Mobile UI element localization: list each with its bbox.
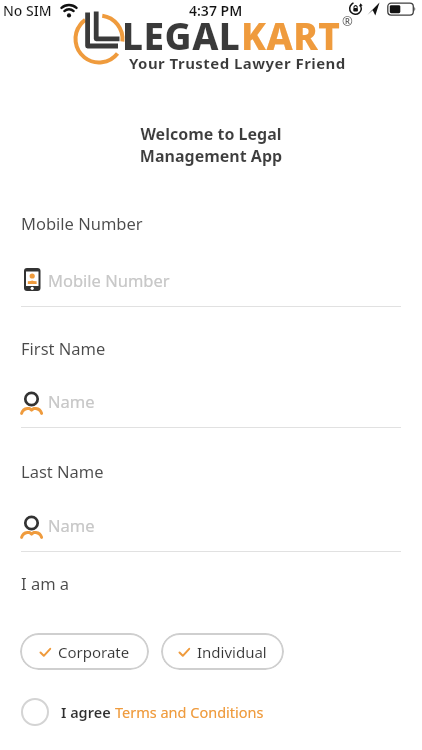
staticText: Your Trusted Lawyer Friend xyxy=(129,53,346,73)
staticText: KART xyxy=(241,10,341,60)
staticText: First Name xyxy=(21,337,106,359)
button[interactable]: Individual xyxy=(161,633,284,670)
staticText: Mobile Number xyxy=(21,212,143,234)
button[interactable] xyxy=(21,506,401,552)
staticText: ® xyxy=(342,12,353,30)
staticText: Individual xyxy=(197,642,267,662)
staticText: 4:37 PM xyxy=(189,1,243,20)
button[interactable]: I agree xyxy=(21,698,264,726)
staticText: Terms and Conditions xyxy=(115,702,264,722)
staticText: Name xyxy=(48,514,95,536)
staticText: Welcome to Legal xyxy=(0,123,422,145)
staticText: No SIM xyxy=(3,1,52,20)
staticText: I am a xyxy=(21,572,70,594)
staticText: LEGAL xyxy=(122,10,241,60)
button[interactable] xyxy=(21,260,401,308)
staticText: Corporate xyxy=(58,642,130,662)
staticText: Last Name xyxy=(21,460,104,482)
button[interactable] xyxy=(21,382,401,428)
staticText: Mobile Number xyxy=(48,269,170,291)
staticText: Management App xyxy=(0,145,422,167)
staticText: Name xyxy=(48,390,95,412)
button[interactable]: Corporate xyxy=(20,633,149,670)
staticText: I agree xyxy=(61,702,111,722)
